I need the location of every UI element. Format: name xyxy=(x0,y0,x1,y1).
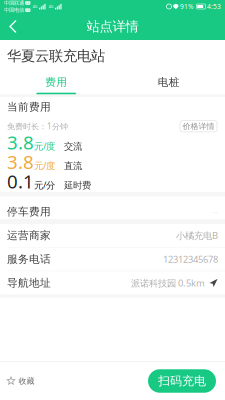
staticText: 元/度 xyxy=(34,140,55,152)
staticText: 华夏云联充电站 xyxy=(7,47,105,65)
staticText: 收藏 xyxy=(18,376,34,386)
staticText: 延时费 xyxy=(64,180,91,191)
staticText: 费用 xyxy=(45,76,67,89)
staticText: 价格详情 xyxy=(182,121,214,131)
staticText: 直流 xyxy=(64,160,82,172)
button[interactable]: 导航地址 xyxy=(0,271,225,294)
staticText: 免费时长：1分钟 xyxy=(7,121,68,131)
staticText: 元/分 xyxy=(34,179,55,191)
staticText: 12312345678 xyxy=(163,253,218,265)
staticText: 4G xyxy=(48,4,53,9)
staticText: 元/度 xyxy=(34,159,55,172)
staticText: 运营商家 xyxy=(7,229,51,242)
staticText: 派诺科技园 0.5km xyxy=(131,277,205,289)
staticText: 站点详情 xyxy=(86,18,138,35)
staticText: 4G xyxy=(26,8,30,12)
staticText: 小橘充电B xyxy=(176,229,218,242)
button[interactable]: 返回 xyxy=(0,13,26,40)
staticText: 4:53 xyxy=(207,2,221,11)
button[interactable]: 运营商家 xyxy=(0,224,225,247)
staticText: 4G xyxy=(26,1,30,5)
staticText: 服务电话 xyxy=(7,253,51,266)
staticText: 导航地址 xyxy=(7,276,51,289)
staticText: 停车费用 xyxy=(7,205,51,218)
button[interactable]: 扫码充电 xyxy=(148,369,216,393)
staticText: 0.1 xyxy=(7,169,34,194)
staticText: 91% xyxy=(180,2,194,11)
button[interactable]: 费用 xyxy=(0,68,112,94)
button[interactable]: 电桩 xyxy=(112,68,225,94)
staticText: 中国联通 xyxy=(4,0,24,6)
staticText: 3.8 xyxy=(7,130,34,155)
button[interactable]: 价格详情 xyxy=(180,121,217,132)
staticText: 交流 xyxy=(64,141,82,152)
staticText: 中国电信 xyxy=(4,7,24,13)
staticText: 电桩 xyxy=(158,76,180,89)
staticText: 扫码充电 xyxy=(158,374,206,388)
staticText: 3.8 xyxy=(7,149,34,174)
button[interactable]: 服务电话 xyxy=(0,248,225,271)
staticText: 当前费用 xyxy=(7,100,51,113)
staticText: 4G xyxy=(32,4,37,9)
button[interactable]: 收藏 xyxy=(0,362,41,400)
